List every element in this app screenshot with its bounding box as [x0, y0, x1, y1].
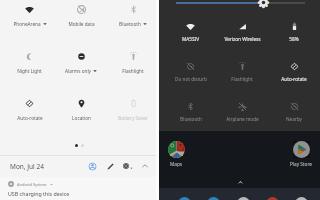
button[interactable]: Verizon Wireless — [216, 20, 268, 48]
staticText: 58% — [289, 36, 299, 42]
staticText: MA5SIV — [182, 36, 199, 42]
button[interactable]: Flashlight — [216, 60, 268, 88]
button[interactable]: Auto-rotate — [4, 95, 55, 129]
button[interactable]: Location — [55, 95, 107, 129]
button[interactable]: Edit tiles — [102, 158, 118, 174]
button[interactable]: Play Store — [290, 141, 312, 167]
button[interactable]: Collapse — [137, 158, 153, 174]
staticText: Airplane mode — [226, 116, 259, 122]
button[interactable]: User account — [84, 158, 100, 174]
staticText: Verizon Wireless — [224, 36, 261, 42]
staticText: Mon, Jul 24 — [10, 162, 44, 171]
button[interactable]: Do not disturb — [165, 60, 216, 88]
button[interactable]: Battery Saver — [107, 95, 159, 129]
staticText: Android System — [17, 182, 47, 187]
button[interactable]: 58% — [268, 20, 320, 48]
staticText: Maps — [170, 161, 183, 167]
staticText: Alarms only — [65, 68, 91, 74]
button[interactable]: Flashlight — [107, 48, 159, 82]
staticText: Flashlight — [122, 68, 144, 74]
staticText: Do not disturb — [175, 76, 207, 82]
staticText: Auto-rotate — [17, 115, 43, 121]
button[interactable]: Open app drawer — [234, 176, 246, 188]
staticText: Battery Saver — [118, 115, 148, 121]
staticText: USB charging this device — [8, 190, 70, 197]
staticText: Night Light — [17, 68, 42, 74]
button[interactable]: Nearby — [268, 100, 320, 128]
staticText: Bluetooth — [119, 21, 141, 27]
button[interactable]: Night Light — [4, 48, 55, 82]
staticText: Bluetooth — [180, 116, 202, 122]
button[interactable]: Bluetooth — [107, 1, 159, 35]
staticText: PhoneArena — [13, 21, 41, 27]
staticText: Mobile data — [68, 21, 95, 27]
staticText: Location — [72, 115, 91, 121]
button[interactable]: Brightness — [258, 0, 269, 8]
staticText: Flashlight — [231, 76, 253, 82]
button[interactable]: Mobile data — [55, 1, 107, 35]
button[interactable]: Maps — [168, 141, 185, 167]
staticText: Play Store — [290, 161, 312, 167]
button[interactable]: Auto-rotate — [268, 60, 320, 88]
button[interactable]: PhoneArena — [4, 1, 55, 35]
button[interactable]: MA5SIV — [165, 20, 216, 48]
button[interactable]: Airplane mode — [216, 100, 268, 128]
staticText: Auto-rotate — [281, 76, 307, 82]
button[interactable]: Settings — [120, 158, 136, 174]
button[interactable]: Alarms only — [55, 48, 107, 82]
staticText: Nearby — [286, 116, 302, 122]
button[interactable]: Bluetooth — [165, 100, 216, 128]
